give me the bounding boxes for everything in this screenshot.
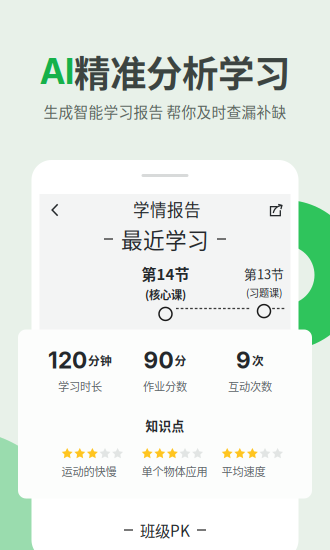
staticText: 9 (236, 346, 251, 374)
staticText: 运动的快慢 (61, 463, 116, 479)
staticText: 次 (252, 352, 264, 369)
staticText: 最近学习 (121, 223, 209, 255)
staticText: 第14节 (141, 263, 189, 284)
staticText: 第13节 (244, 264, 284, 283)
staticText: (习题课) (246, 285, 282, 300)
staticText: 班级PK (140, 519, 190, 541)
staticText: 作业分数 (143, 378, 187, 394)
staticText: 精准分析学习 (74, 45, 290, 98)
staticText: 生成智能学习报告 帮你及时查漏补缺 (43, 101, 286, 122)
staticText: (核心课) (145, 286, 186, 302)
staticText: 学情报告 (133, 197, 201, 221)
button[interactable]: Share (266, 200, 286, 220)
staticText: 知识点 (145, 416, 184, 434)
staticText: 分钟 (88, 352, 112, 369)
staticText: 平均速度 (221, 463, 265, 479)
staticText: 90 (143, 346, 173, 374)
button[interactable]: Back (45, 200, 65, 220)
staticText: 学习时长 (58, 378, 102, 394)
staticText: 互动次数 (228, 378, 272, 394)
staticText: AI (40, 50, 74, 92)
staticText: 分 (174, 352, 186, 369)
staticText: 单个物体应用 (141, 463, 207, 479)
staticText: 120 (48, 346, 87, 374)
